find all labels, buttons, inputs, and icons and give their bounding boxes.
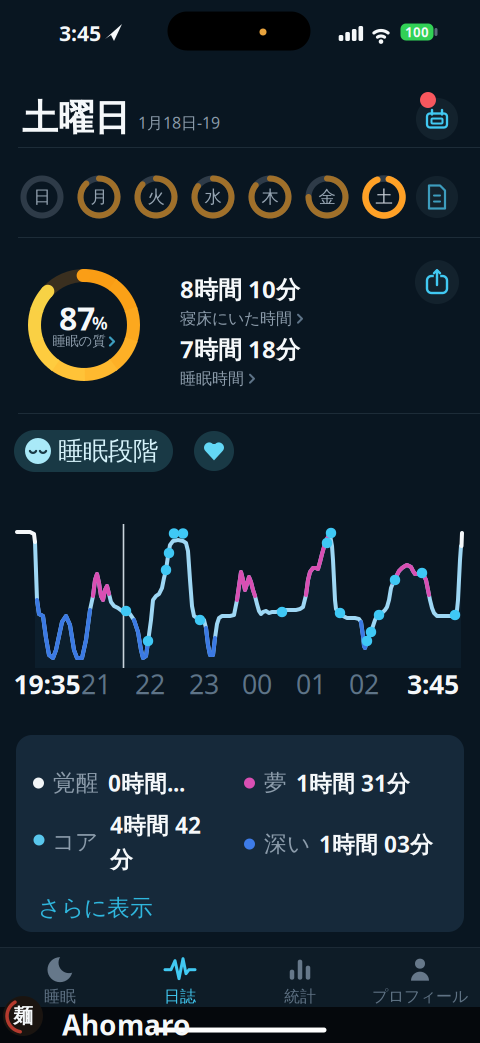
- staticText: 日誌: [164, 987, 196, 1006]
- staticText: 02: [349, 666, 379, 702]
- button[interactable]: 8時間 10分: [180, 273, 303, 328]
- staticText: 23: [189, 666, 219, 702]
- staticText: 睡眠段階: [58, 435, 158, 466]
- staticText: 睡眠時間: [180, 369, 244, 389]
- staticText: 睡眠: [44, 987, 76, 1006]
- staticText: コア: [52, 828, 98, 856]
- button[interactable]: 土: [362, 175, 406, 219]
- staticText: 0時間...: [108, 768, 185, 798]
- staticText: 水: [204, 186, 221, 208]
- staticText: 土曜日: [22, 96, 130, 140]
- button[interactable]: お気に入り: [194, 431, 234, 471]
- staticText: Ahomaro: [62, 1006, 191, 1043]
- staticText: 87: [59, 297, 95, 339]
- staticText: 21: [81, 666, 111, 702]
- button[interactable]: メモ: [415, 175, 459, 219]
- staticText: 00: [242, 666, 272, 702]
- staticText: 3:45: [59, 19, 101, 47]
- button[interactable]: 87: [26, 267, 142, 383]
- staticText: 日: [33, 186, 50, 208]
- staticText: 火: [147, 186, 164, 208]
- staticText: 金: [318, 186, 335, 208]
- button[interactable]: 金: [305, 175, 349, 219]
- staticText: 麺: [13, 1004, 33, 1028]
- staticText: 睡眠の質: [52, 333, 105, 349]
- button[interactable]: プロフィール: [361, 956, 479, 1008]
- staticText: 1月18日-19: [138, 112, 220, 133]
- button[interactable]: 月: [77, 175, 121, 219]
- staticText: 100: [405, 23, 429, 41]
- button[interactable]: 統計: [241, 956, 359, 1008]
- staticText: さらに表示: [38, 894, 153, 922]
- staticText: 4時間 42: [110, 810, 201, 840]
- staticText: 木: [261, 186, 278, 208]
- staticText: 3:45: [407, 666, 459, 702]
- button[interactable]: 7時間 18分: [180, 333, 300, 388]
- button[interactable]: カレンダー: [411, 91, 463, 143]
- staticText: 1時間 31分: [296, 768, 410, 798]
- button[interactable]: 火: [134, 175, 178, 219]
- button[interactable]: 睡眠段階: [14, 430, 173, 472]
- staticText: プロフィール: [372, 987, 468, 1006]
- staticText: 夢: [264, 769, 287, 797]
- staticText: 22: [135, 666, 165, 702]
- staticText: 覚醒: [53, 769, 99, 797]
- button[interactable]: 日誌: [121, 956, 239, 1008]
- button[interactable]: 睡眠: [1, 956, 119, 1008]
- staticText: 7時間 18分: [180, 333, 300, 365]
- staticText: 19:35: [13, 666, 80, 702]
- button[interactable]: さらに表示: [38, 894, 153, 922]
- button[interactable]: 木: [248, 175, 292, 219]
- staticText: 01: [296, 666, 326, 702]
- staticText: 月: [90, 186, 107, 208]
- staticText: 深い: [264, 830, 310, 858]
- staticText: 分: [110, 846, 133, 874]
- staticText: 統計: [284, 987, 316, 1006]
- staticText: 寝床にいた時間: [180, 309, 292, 329]
- button[interactable]: 共有: [413, 258, 461, 306]
- staticText: 1時間 03分: [319, 829, 433, 859]
- staticText: 土: [375, 186, 392, 208]
- staticText: 8時間 10分: [180, 273, 300, 305]
- staticText: %: [92, 311, 108, 334]
- button[interactable]: 日: [20, 175, 64, 219]
- button[interactable]: 水: [191, 175, 235, 219]
